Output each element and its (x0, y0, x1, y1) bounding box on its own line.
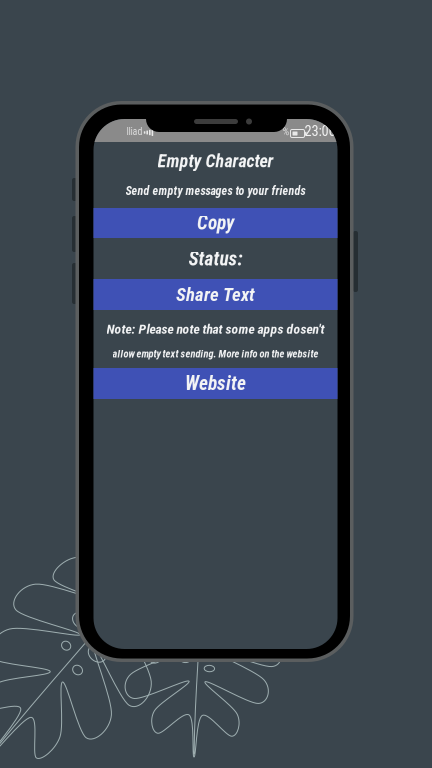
staticText: allow empty text sending. More info on t… (112, 348, 318, 360)
staticText: Send empty messages to your friends (125, 184, 305, 198)
staticText: Note: Please note that some apps dosen't (106, 321, 324, 337)
staticText: 23:06 (304, 123, 335, 139)
staticText: Empty Character (157, 150, 273, 172)
staticText: Status: (188, 248, 242, 270)
staticText: % (282, 125, 289, 138)
button[interactable]: Website (93, 368, 337, 399)
staticText: Copy (197, 212, 234, 234)
button[interactable]: Copy (93, 208, 337, 238)
staticText: lliad (126, 126, 142, 137)
staticText: Website (185, 372, 246, 395)
staticText: Share Text (176, 284, 255, 305)
button[interactable]: Share Text (93, 279, 337, 310)
